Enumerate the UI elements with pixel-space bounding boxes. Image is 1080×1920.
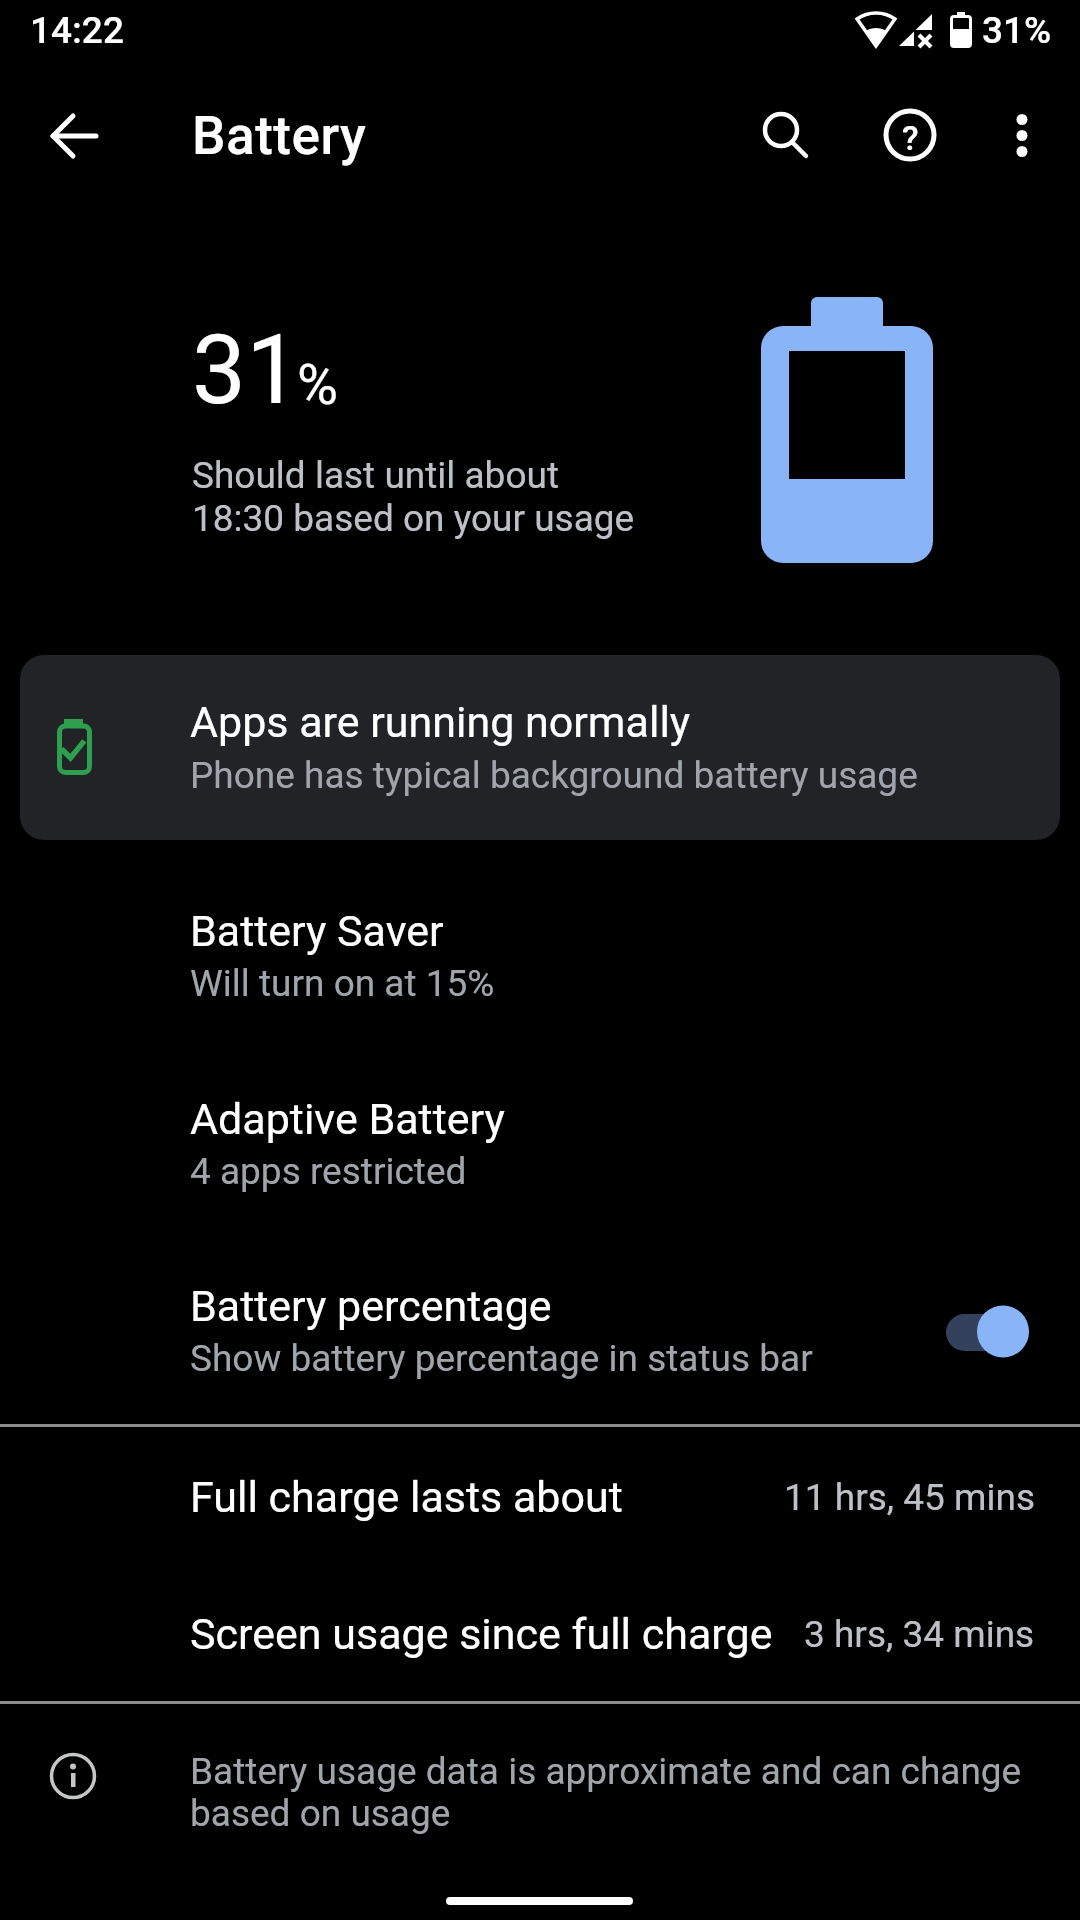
staticText: Screen usage since full charge — [190, 1609, 773, 1659]
staticText: 11 hrs, 45 mins — [784, 1476, 1035, 1519]
staticText: Battery usage data is approximate and ca… — [190, 1750, 1022, 1835]
button[interactable] — [946, 1305, 1030, 1358]
button[interactable]: Adaptive Battery — [0, 1090, 1080, 1203]
button[interactable]: Apps are running normally — [20, 655, 1060, 840]
staticText: Adaptive Battery — [190, 1094, 505, 1144]
staticText: Phone has typical background battery usa… — [190, 754, 918, 797]
staticText: Full charge lasts about — [190, 1472, 623, 1522]
button[interactable]: Battery percentage — [0, 1277, 1080, 1390]
staticText: 4 apps restricted — [190, 1150, 467, 1193]
staticText: Show battery percentage in status bar — [190, 1337, 813, 1380]
button[interactable]: ? — [868, 94, 952, 178]
staticText: Apps are running normally — [190, 697, 691, 747]
staticText: 31% — [982, 9, 1052, 52]
staticText: 14:22 — [30, 9, 124, 52]
button[interactable] — [32, 94, 116, 178]
staticText: ? — [902, 118, 919, 158]
button[interactable] — [980, 94, 1064, 178]
staticText: 31 — [192, 314, 300, 427]
staticText: 3 hrs, 34 mins — [804, 1613, 1035, 1656]
staticText: Battery percentage — [190, 1281, 552, 1331]
staticText: Will turn on at 15% — [190, 962, 495, 1005]
staticText: % — [297, 352, 339, 418]
staticText: Battery — [192, 105, 367, 167]
staticText: Battery Saver — [190, 906, 444, 956]
button[interactable]: Battery Saver — [0, 902, 1080, 1015]
button[interactable]: Screen usage since full charge — [0, 1603, 1080, 1665]
button[interactable] — [742, 94, 826, 178]
button[interactable]: Full charge lasts about — [0, 1466, 1080, 1528]
staticText: Should last until about 18:30 based on y… — [192, 454, 635, 540]
